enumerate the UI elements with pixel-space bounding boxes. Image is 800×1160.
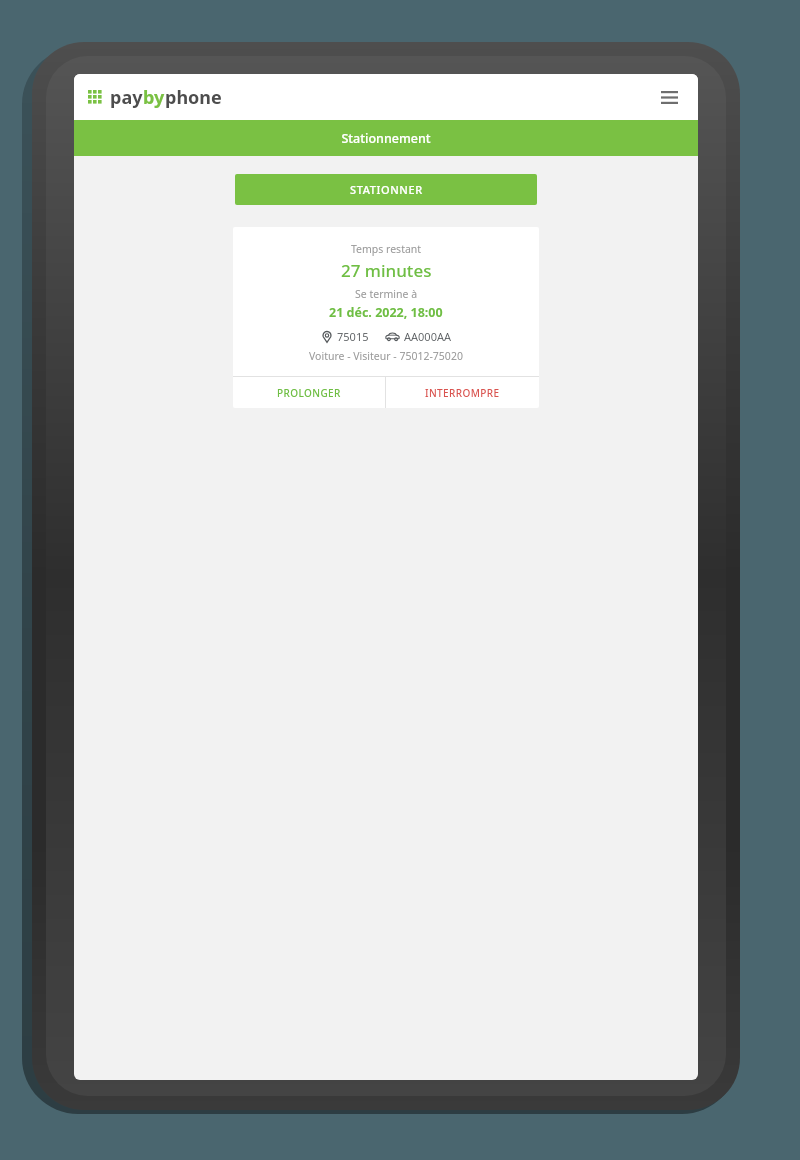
staticText: 21 déc. 2022, 18:00 bbox=[329, 304, 443, 321]
staticText: AA000AA bbox=[404, 329, 451, 344]
staticText: Temps restant bbox=[351, 242, 422, 256]
staticText: pay bbox=[110, 85, 143, 110]
staticText: by bbox=[143, 85, 165, 110]
staticText: 27 minutes bbox=[341, 259, 432, 282]
staticText: STATIONNER bbox=[350, 182, 423, 197]
button[interactable]: PROLONGER bbox=[233, 377, 385, 408]
button[interactable]: INTERROMPRE bbox=[386, 377, 539, 408]
staticText: Stationnement bbox=[341, 130, 431, 147]
button[interactable]: pay bbox=[88, 85, 222, 110]
button[interactable]: STATIONNER bbox=[235, 174, 537, 205]
button[interactable]: Menu bbox=[652, 80, 686, 114]
staticText: INTERROMPRE bbox=[425, 386, 500, 400]
staticText: Voiture - Visiteur - 75012-75020 bbox=[309, 349, 463, 363]
staticText: 75015 bbox=[337, 329, 369, 344]
staticText: PROLONGER bbox=[277, 386, 341, 400]
staticText: phone bbox=[165, 85, 222, 110]
staticText: Se termine à bbox=[355, 287, 418, 301]
